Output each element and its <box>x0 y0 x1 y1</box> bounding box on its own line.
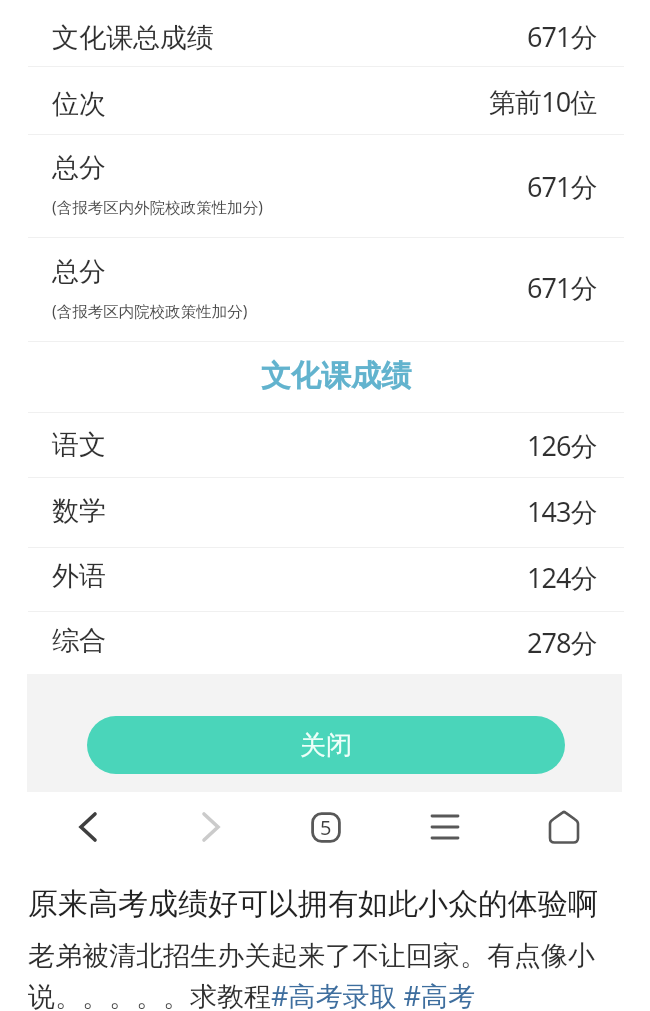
button[interactable]: Back <box>62 801 114 853</box>
staticText: 5 <box>320 814 332 841</box>
button[interactable]: 综合 <box>0 612 650 674</box>
button[interactable]: 位次 <box>0 67 650 134</box>
staticText: 278分 <box>527 624 597 661</box>
staticText: 外语 <box>52 559 106 593</box>
button[interactable]: Tabs <box>300 801 352 853</box>
staticText: 文化课总成绩 <box>52 21 214 55</box>
staticText: 关闭 <box>300 729 352 762</box>
button[interactable]: 文化课总成绩 <box>0 0 650 66</box>
staticText: 老弟被清北招生办关起来了不让回家。有点像小说。。。。。求教程#高考录取 #高考 <box>28 939 636 1011</box>
button[interactable]: 关闭 <box>87 716 565 774</box>
staticText: 671分 <box>527 18 597 55</box>
staticText: (含报考区内院校政策性加分) <box>52 300 248 321</box>
button[interactable]: 语文 <box>0 413 650 477</box>
button[interactable]: 数学 <box>0 478 650 547</box>
staticText: 671分 <box>527 269 597 306</box>
staticText: 143分 <box>527 493 597 530</box>
button[interactable]: 外语 <box>0 548 650 611</box>
staticText: 671分 <box>527 168 597 205</box>
staticText: 文化课成绩 <box>261 357 411 395</box>
staticText: 语文 <box>52 428 106 462</box>
button[interactable]: 总分 <box>0 135 650 237</box>
staticText: 原来高考成绩好可以拥有如此小众的体验啊 <box>28 885 598 923</box>
staticText: (含报考区内外院校政策性加分) <box>52 196 263 217</box>
button[interactable]: Menu <box>419 801 471 853</box>
button[interactable]: Home <box>538 801 590 853</box>
staticText: 总分 <box>52 255 106 289</box>
staticText: 位次 <box>52 87 106 121</box>
staticText: 第前10位 <box>489 83 597 120</box>
staticText: 综合 <box>52 624 106 658</box>
staticText: 126分 <box>527 427 597 464</box>
staticText: 总分 <box>52 151 106 185</box>
button[interactable]: 总分 <box>0 238 650 341</box>
staticText: 数学 <box>52 494 106 528</box>
button[interactable]: Forward <box>185 801 237 853</box>
staticText: 124分 <box>527 559 597 596</box>
